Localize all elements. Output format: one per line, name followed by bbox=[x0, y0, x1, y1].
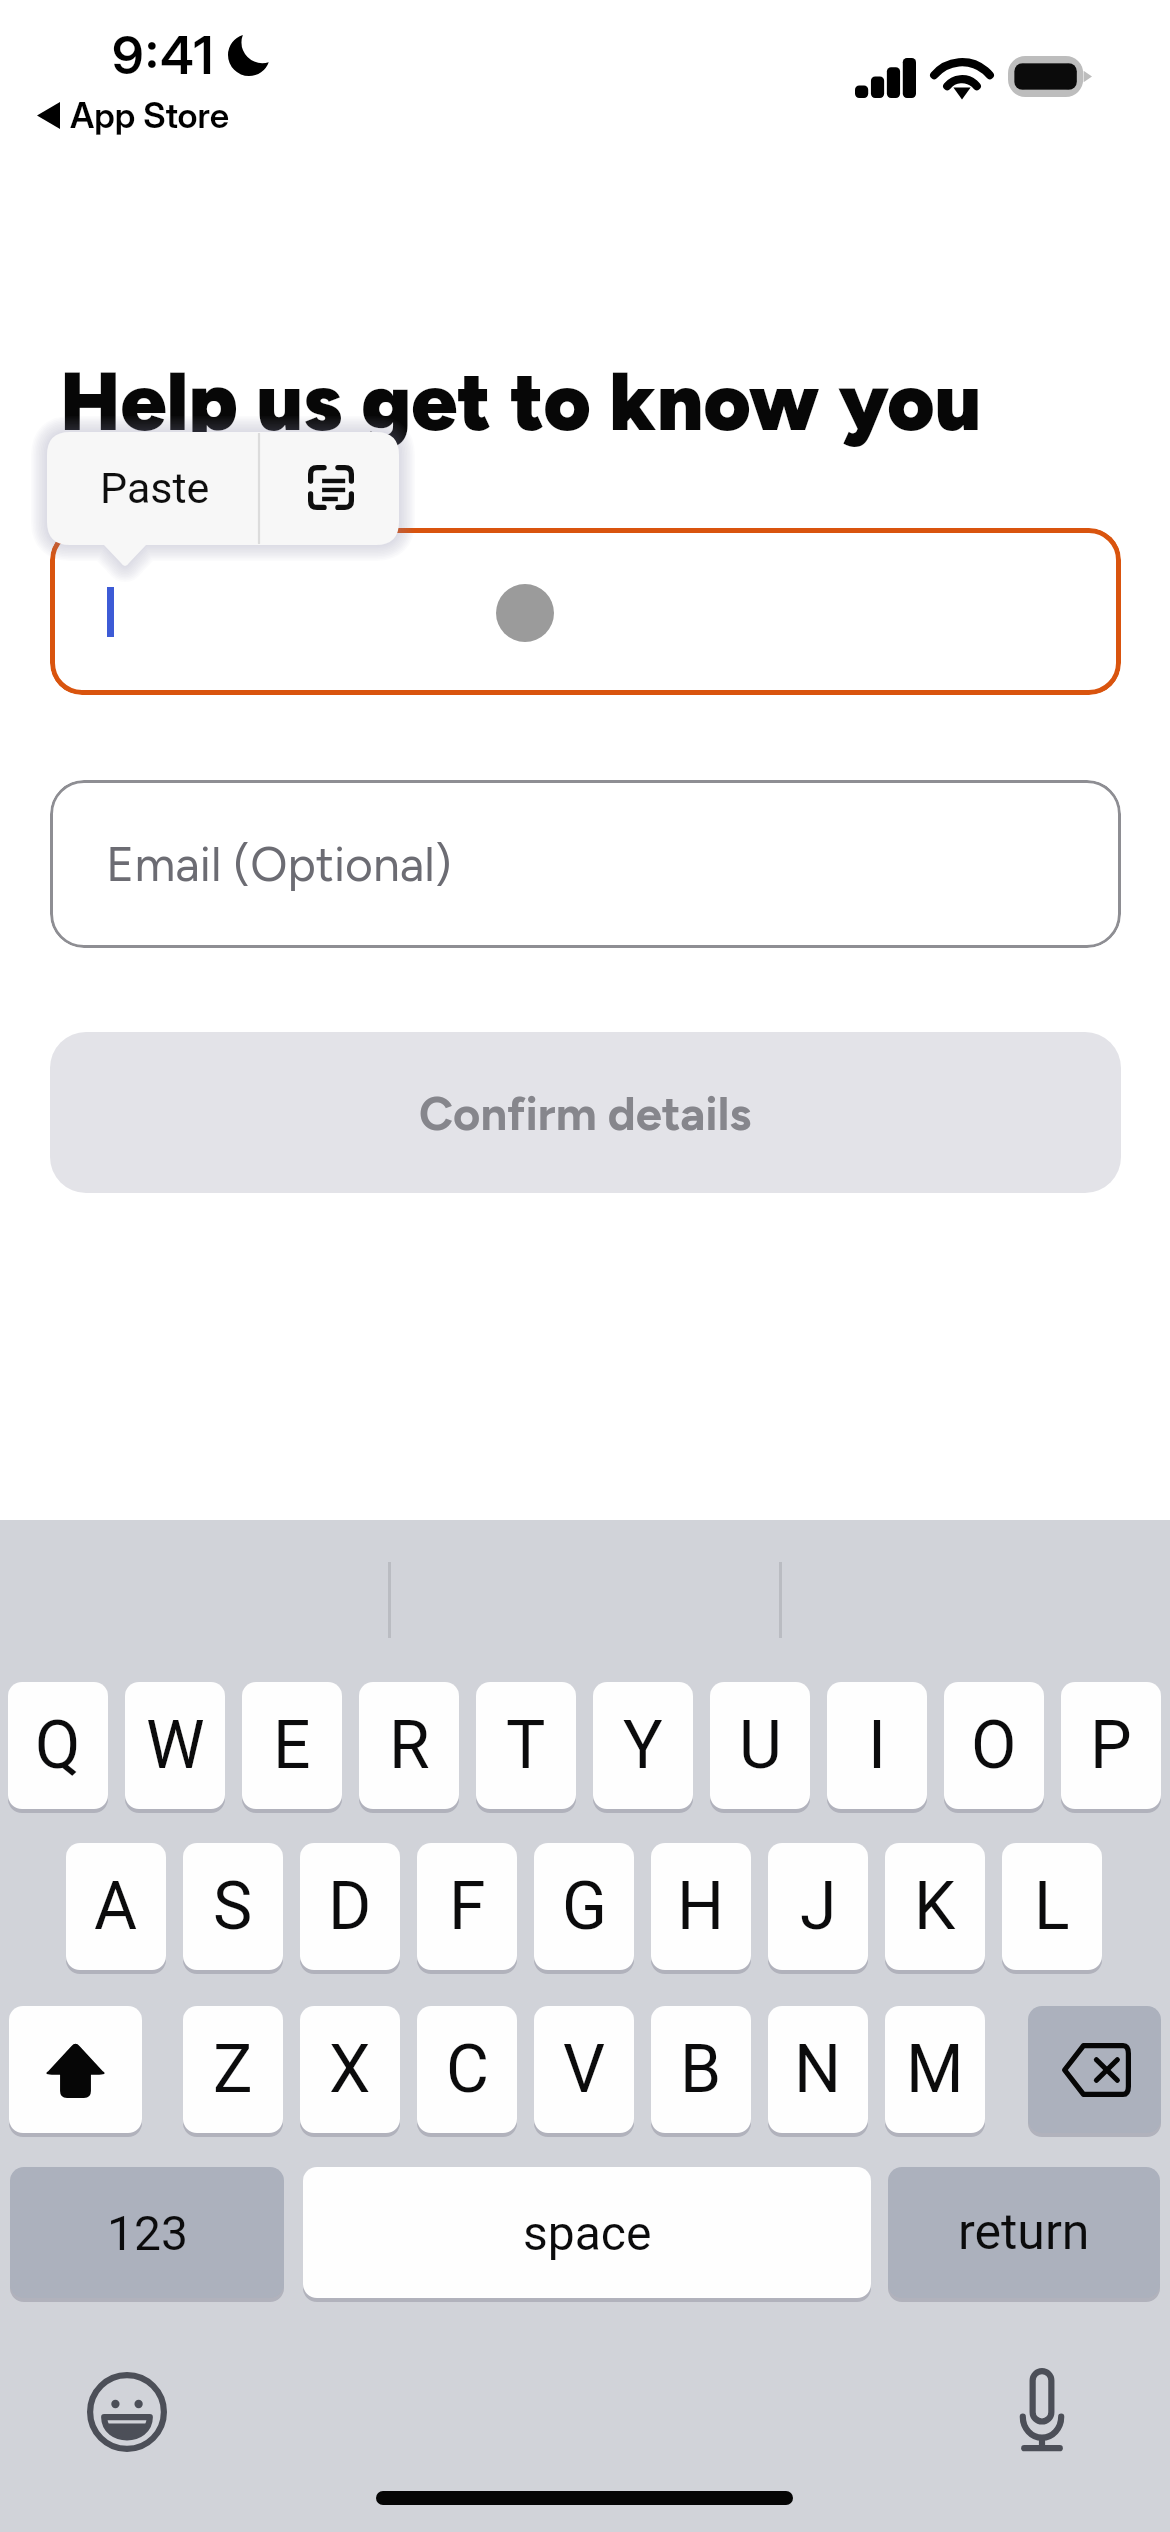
button[interactable]: Scan text bbox=[288, 444, 374, 530]
staticText: Q bbox=[35, 1707, 81, 1784]
staticText: Z bbox=[213, 2031, 253, 2108]
button[interactable]: Email (Optional) bbox=[50, 780, 1121, 948]
button[interactable]: T bbox=[476, 1682, 576, 1809]
button[interactable]: O bbox=[944, 1682, 1044, 1809]
staticText: E bbox=[273, 1707, 311, 1784]
staticText: J bbox=[800, 1868, 837, 1945]
button[interactable]: 123 bbox=[10, 2167, 284, 2298]
button[interactable]: Z bbox=[183, 2006, 283, 2133]
button[interactable]: Emoji keyboard bbox=[87, 2372, 167, 2452]
button[interactable]: F bbox=[417, 1843, 517, 1970]
button[interactable]: Shift bbox=[9, 2006, 142, 2133]
button[interactable]: P bbox=[1061, 1682, 1161, 1809]
staticText: F bbox=[449, 1868, 486, 1945]
button[interactable]: B bbox=[651, 2006, 751, 2133]
button[interactable]: U bbox=[710, 1682, 810, 1809]
button[interactable]: X bbox=[300, 2006, 400, 2133]
staticText: P bbox=[1090, 1707, 1132, 1784]
button[interactable]: Backspace bbox=[1028, 2006, 1161, 2133]
button[interactable]: M bbox=[885, 2006, 985, 2133]
button[interactable]: space bbox=[303, 2167, 871, 2298]
staticText: U bbox=[739, 1707, 782, 1784]
staticText: K bbox=[914, 1868, 956, 1945]
staticText: M bbox=[906, 2031, 964, 2108]
staticText: D bbox=[328, 1868, 372, 1945]
button[interactable]: W bbox=[125, 1682, 225, 1809]
staticText: App Store bbox=[70, 94, 230, 136]
button[interactable]: H bbox=[651, 1843, 751, 1970]
staticText: C bbox=[446, 2031, 489, 2108]
staticText: S bbox=[213, 1868, 253, 1945]
button[interactable]: L bbox=[1002, 1843, 1102, 1970]
staticText: X bbox=[329, 2031, 371, 2108]
staticText: R bbox=[389, 1707, 430, 1784]
button[interactable]: J bbox=[768, 1843, 868, 1970]
staticText: O bbox=[971, 1707, 1017, 1784]
button[interactable]: return bbox=[888, 2167, 1160, 2298]
staticText: L bbox=[1034, 1868, 1070, 1945]
button[interactable]: R bbox=[359, 1682, 459, 1809]
staticText: B bbox=[680, 2031, 722, 2108]
staticText: A bbox=[94, 1868, 138, 1945]
button[interactable]: K bbox=[885, 1843, 985, 1970]
staticText: space bbox=[523, 2205, 652, 2261]
button[interactable]: I bbox=[827, 1682, 927, 1809]
button[interactable]: Y bbox=[593, 1682, 693, 1809]
button[interactable] bbox=[50, 528, 1121, 695]
button[interactable]: G bbox=[534, 1843, 634, 1970]
staticText: Help us get to know you bbox=[60, 353, 982, 450]
staticText: I bbox=[868, 1707, 886, 1784]
button[interactable]: Paste bbox=[100, 463, 210, 513]
staticText: Y bbox=[623, 1707, 663, 1784]
staticText: 123 bbox=[107, 2205, 188, 2261]
staticText: Email (Optional) bbox=[106, 835, 452, 893]
staticText: G bbox=[562, 1868, 607, 1945]
button[interactable]: Dictation bbox=[1000, 2368, 1084, 2452]
staticText: V bbox=[563, 2031, 606, 2108]
button[interactable]: C bbox=[417, 2006, 517, 2133]
button[interactable]: Confirm details bbox=[50, 1032, 1121, 1193]
staticText: T bbox=[506, 1707, 546, 1784]
button[interactable]: E bbox=[242, 1682, 342, 1809]
button[interactable]: V bbox=[534, 2006, 634, 2133]
staticText: W bbox=[146, 1707, 205, 1784]
staticText: H bbox=[677, 1868, 725, 1945]
staticText: return bbox=[958, 2203, 1090, 2262]
button[interactable]: D bbox=[300, 1843, 400, 1970]
button[interactable]: S bbox=[183, 1843, 283, 1970]
staticText: Confirm details bbox=[419, 1085, 752, 1141]
button[interactable]: App Store bbox=[37, 94, 230, 136]
staticText: 9:41 bbox=[112, 24, 216, 87]
button[interactable]: A bbox=[66, 1843, 166, 1970]
button[interactable]: Q bbox=[8, 1682, 108, 1809]
button[interactable]: N bbox=[768, 2006, 868, 2133]
staticText: N bbox=[794, 2031, 842, 2108]
